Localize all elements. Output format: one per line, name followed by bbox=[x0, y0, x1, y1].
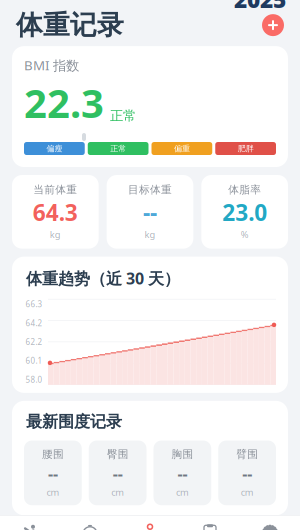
staticText: 体脂率 bbox=[228, 183, 261, 196]
staticText: cm bbox=[176, 486, 189, 498]
button[interactable]: 添加记录 bbox=[262, 14, 284, 36]
staticText: 66.3 bbox=[25, 299, 42, 309]
staticText: cm bbox=[46, 486, 59, 498]
staticText: 62.2 bbox=[25, 337, 42, 347]
staticText: 23.0 bbox=[222, 197, 267, 227]
staticText: cm bbox=[241, 486, 254, 498]
button[interactable]: 事项 bbox=[180, 522, 240, 530]
staticText: 肥胖 bbox=[238, 144, 254, 153]
button[interactable]: 运动 bbox=[0, 522, 60, 530]
staticText: 胸围 bbox=[171, 447, 193, 461]
staticText: -- bbox=[177, 463, 187, 484]
staticText: 22.3 bbox=[24, 76, 104, 129]
staticText: 偏瘦 bbox=[46, 144, 62, 153]
staticText: 腰围 bbox=[42, 447, 64, 461]
staticText: 60.1 bbox=[25, 355, 42, 366]
staticText: 64.3 bbox=[33, 197, 78, 227]
staticText: BMI 指数 bbox=[24, 56, 79, 74]
staticText: kg bbox=[144, 228, 155, 241]
staticText: -- bbox=[113, 463, 123, 484]
staticText: 体重记录 bbox=[16, 9, 124, 42]
staticText: 目标体重 bbox=[128, 183, 172, 196]
staticText: 2025 bbox=[234, 0, 286, 14]
button[interactable]: 设置 bbox=[240, 522, 300, 530]
staticText: 最新围度记录 bbox=[26, 412, 122, 432]
staticText: 58.0 bbox=[25, 374, 42, 385]
staticText: cm bbox=[111, 486, 124, 498]
staticText: 臂围 bbox=[236, 447, 258, 461]
staticText: kg bbox=[50, 228, 61, 241]
staticText: 偏重 bbox=[174, 144, 190, 153]
staticText: -- bbox=[143, 197, 157, 227]
staticText: -- bbox=[242, 463, 252, 484]
staticText: 体重趋势（近 30 天） bbox=[26, 268, 180, 289]
staticText: 臀围 bbox=[107, 447, 129, 461]
staticText: 正常 bbox=[110, 108, 136, 124]
button[interactable]: 体重 bbox=[120, 522, 180, 530]
button[interactable]: 计时 bbox=[60, 522, 120, 530]
staticText: 当前体重 bbox=[33, 183, 77, 196]
staticText: % bbox=[241, 228, 249, 241]
staticText: 64.2 bbox=[25, 318, 42, 328]
staticText: 正常 bbox=[110, 144, 126, 153]
staticText: -- bbox=[48, 463, 58, 484]
